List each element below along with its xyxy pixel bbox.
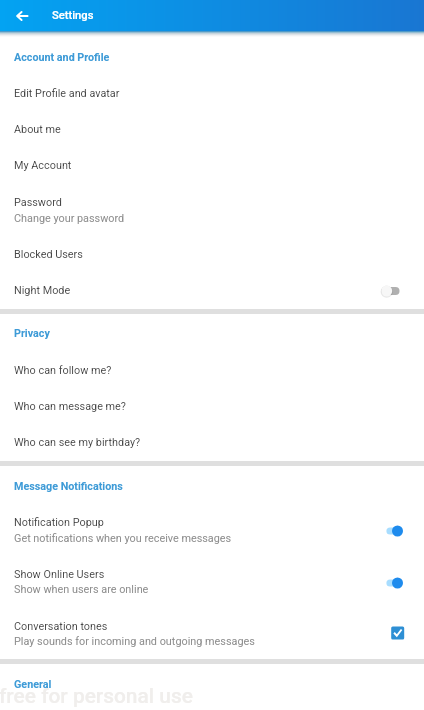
staticText: Who can see my birthday? — [14, 436, 141, 449]
button[interactable]: Who can message me? — [0, 384, 424, 420]
staticText: Who can message me? — [14, 400, 126, 413]
button[interactable]: About me — [0, 107, 424, 143]
button[interactable]: Show Online Users — [0, 552, 424, 604]
staticText: General — [14, 678, 52, 691]
button[interactable]: Conversation tones, checked — [378, 620, 412, 646]
button[interactable]: Who can see my birthday? — [0, 420, 424, 456]
staticText: Blocked Users — [14, 248, 83, 261]
staticText: About me — [14, 123, 61, 136]
button[interactable]: Back — [6, 0, 38, 31]
staticText: Settings — [52, 9, 94, 22]
staticText: Privacy — [14, 327, 50, 340]
staticText: Notification Popup — [14, 516, 104, 529]
button[interactable]: Password — [0, 179, 424, 231]
staticText: Conversation tones — [14, 620, 108, 633]
button[interactable]: Who can follow me? — [0, 348, 424, 384]
button[interactable]: Night Mode — [0, 267, 424, 307]
staticText: Show Online Users — [14, 568, 105, 581]
staticText: Show when users are online — [14, 583, 149, 596]
staticText: Who can follow me? — [14, 364, 112, 377]
button[interactable]: Blocked Users — [0, 231, 424, 267]
staticText: Get notifications when you receive messa… — [14, 532, 232, 545]
staticText: Message Notifications — [14, 480, 123, 493]
staticText: Password — [14, 196, 62, 209]
staticText: Play sounds for incoming and outgoing me… — [14, 635, 255, 648]
staticText: Edit Profile and avatar — [14, 87, 120, 100]
button[interactable]: My Account — [0, 143, 424, 179]
button[interactable]: Conversation tones — [0, 604, 424, 656]
staticText: Account and Profile — [14, 51, 110, 64]
staticText: My Account — [14, 159, 72, 172]
staticText: Change your password — [14, 212, 125, 225]
staticText: Night Mode — [14, 284, 71, 297]
button[interactable]: Night Mode, off — [378, 278, 412, 304]
button[interactable]: Notification Popup — [0, 500, 424, 552]
button[interactable]: Show Online Users, on — [378, 570, 412, 596]
button[interactable]: Notification Popup, on — [378, 518, 412, 544]
button[interactable]: Edit Profile and avatar — [0, 71, 424, 107]
staticText: free for personal use — [0, 684, 193, 708]
